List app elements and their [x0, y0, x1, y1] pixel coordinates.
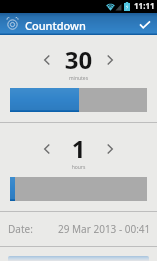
staticText: 11:11: [134, 0, 155, 11]
button[interactable]: hours slider: [10, 177, 147, 201]
button[interactable]: Decrease hours: [39, 141, 55, 157]
button[interactable]: Date:: [0, 212, 157, 246]
button[interactable]: Done: [131, 13, 157, 35]
staticText: 30: [0, 43, 157, 76]
staticText: 29 Mar 2013 - 00:41: [58, 222, 151, 236]
staticText: minutes: [0, 75, 157, 82]
button[interactable]: Increase hours: [102, 141, 118, 157]
button[interactable]: minutes slider: [10, 88, 147, 112]
button[interactable]: Start countdown: [8, 256, 149, 261]
button[interactable]: Increase minutes: [102, 52, 118, 68]
staticText: hours: [0, 164, 157, 171]
staticText: 1: [0, 132, 157, 165]
button[interactable]: Decrease minutes: [39, 52, 55, 68]
staticText: Date:: [8, 222, 33, 236]
staticText: Countdown: [25, 18, 86, 33]
